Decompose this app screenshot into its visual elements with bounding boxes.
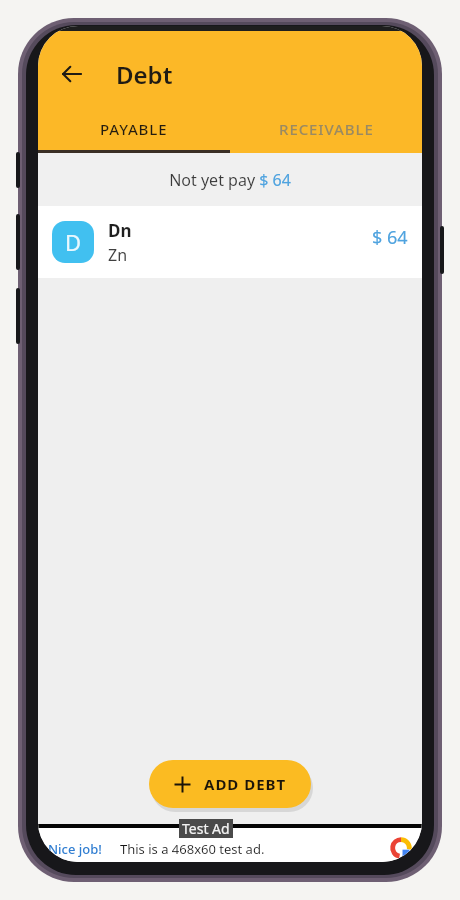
staticText: Not yet pay $ 64 [169, 169, 291, 191]
staticText: D [65, 227, 82, 257]
staticText: ADD DEBT [204, 774, 287, 794]
staticText: Zn [108, 244, 128, 266]
staticText: This is a 468x60 test ad. [120, 840, 265, 858]
staticText: RECEIVABLE [279, 119, 374, 139]
button[interactable]: Nice job! [38, 824, 422, 862]
staticText: Debt [116, 58, 173, 91]
button[interactable]: D [38, 206, 422, 278]
button[interactable]: PAYABLE [38, 105, 230, 153]
staticText: Nice job! [48, 840, 102, 858]
button[interactable]: RECEIVABLE [230, 105, 422, 153]
staticText: $ 64 [372, 225, 408, 250]
button[interactable]: ADD DEBT [149, 760, 311, 808]
staticText: Dn [108, 219, 132, 242]
staticText: Test Ad [182, 819, 230, 838]
button[interactable]: Back [50, 52, 94, 96]
staticText: PAYABLE [100, 119, 168, 139]
